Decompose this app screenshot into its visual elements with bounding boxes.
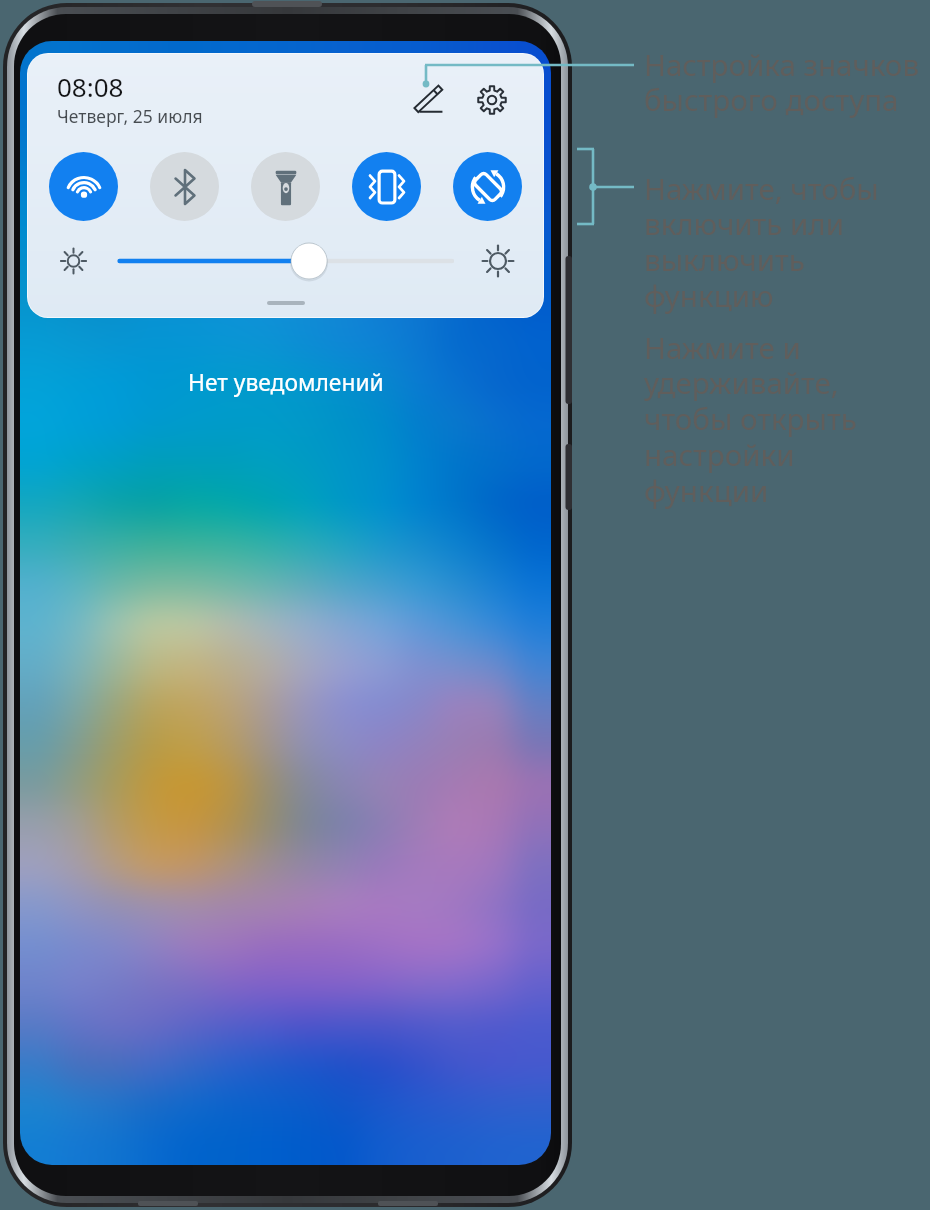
- button[interactable]: Потянуть панель: [226, 291, 346, 317]
- button[interactable]: Вибрация: [352, 152, 421, 221]
- staticText: Нажмите и удерживайте, чтобы открыть нас…: [644, 327, 912, 511]
- button[interactable]: Настройки: [466, 74, 518, 126]
- button[interactable]: Яркость: [28, 233, 543, 289]
- staticText: 08:08: [57, 69, 124, 104]
- staticText: Настройка значков быстрого доступа: [644, 44, 930, 120]
- button[interactable]: Bluetooth: [150, 152, 219, 221]
- staticText: Нажмите, чтобы включить или выключить фу…: [644, 168, 896, 316]
- button[interactable]: Настройка значков быстрого доступа: [403, 74, 455, 126]
- staticText: Нет уведомлений: [188, 367, 384, 398]
- button[interactable]: Wi-Fi: [49, 152, 118, 221]
- staticText: Четверг, 25 июля: [57, 104, 203, 128]
- button[interactable]: Фонарик: [251, 152, 320, 221]
- button[interactable]: Автоповорот: [453, 152, 522, 221]
